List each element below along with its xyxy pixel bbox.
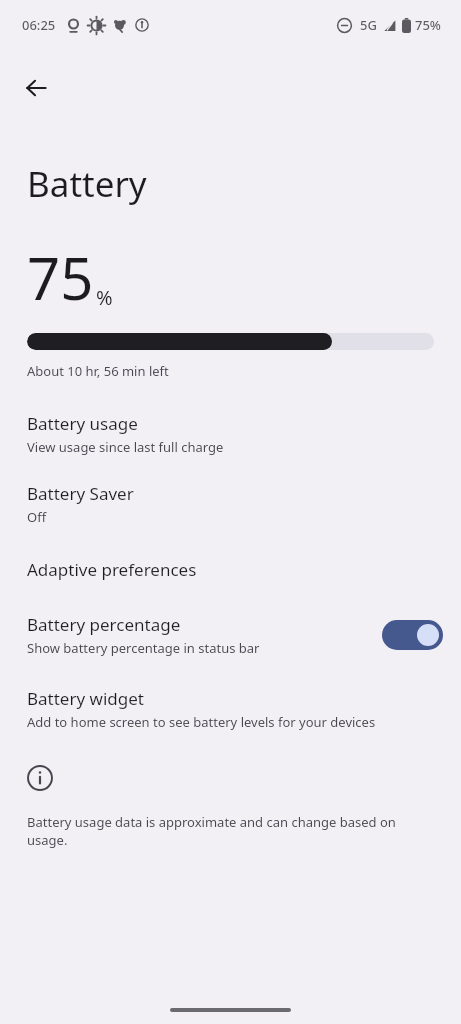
staticText: 06:25	[22, 16, 56, 34]
staticText: Battery percentage	[27, 613, 181, 636]
staticText: Battery Saver	[27, 482, 134, 505]
staticText: 5G	[360, 16, 377, 34]
staticText: Battery	[27, 160, 147, 208]
staticText: Show battery percentage in status bar	[27, 639, 260, 657]
staticText: 75	[27, 238, 94, 317]
button[interactable]: Battery percentage	[0, 611, 461, 659]
staticText: Battery usage data is approximate and ca…	[27, 813, 437, 849]
button[interactable]: Battery percentage toggle	[382, 620, 443, 650]
button[interactable]: Battery usage	[0, 410, 461, 458]
button[interactable]: Battery widget	[0, 685, 461, 733]
staticText: %	[96, 284, 113, 311]
button[interactable]: Back	[12, 64, 60, 112]
staticText: Off	[27, 508, 47, 526]
button[interactable]: Adaptive preferences	[0, 554, 461, 585]
staticText: About 10 hr, 56 min left	[27, 362, 169, 380]
staticText: Battery usage	[27, 412, 138, 435]
other: Information	[27, 765, 53, 791]
staticText: Add to home screen to see battery levels…	[27, 713, 376, 731]
staticText: 75%	[415, 16, 441, 34]
staticText: View usage since last full charge	[27, 438, 224, 456]
button[interactable]: Battery Saver	[0, 480, 461, 528]
staticText: Adaptive preferences	[27, 558, 197, 581]
staticText: Battery widget	[27, 687, 144, 710]
